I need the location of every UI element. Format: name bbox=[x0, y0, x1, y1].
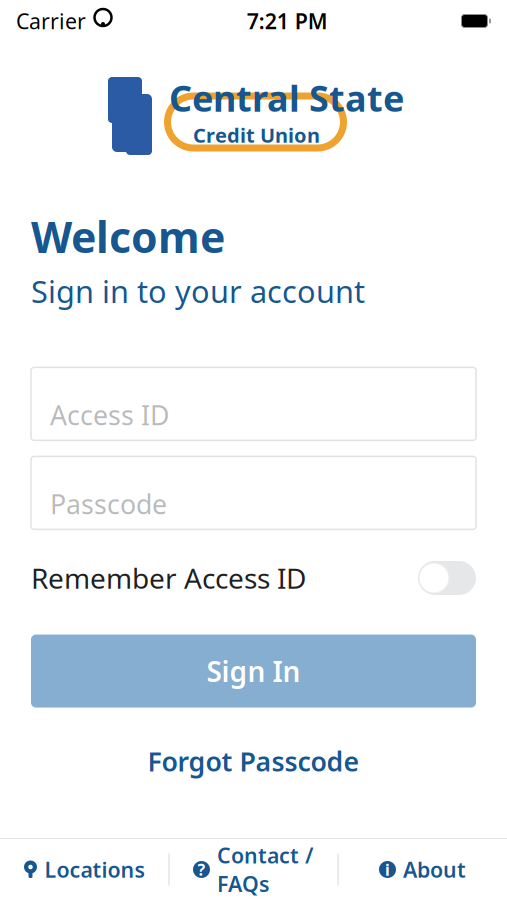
staticText: i bbox=[385, 859, 390, 880]
staticText: Remember Access ID bbox=[31, 559, 306, 597]
button[interactable]: Locations bbox=[0, 839, 168, 900]
button[interactable]: Forgot Passcode bbox=[131, 734, 375, 789]
staticText: Credit Union bbox=[193, 122, 320, 148]
staticText: Contact / FAQs bbox=[217, 841, 314, 898]
staticText: ? bbox=[197, 859, 205, 880]
staticText: Central State bbox=[169, 74, 404, 122]
staticText: Locations bbox=[44, 855, 145, 884]
button[interactable]: ? bbox=[169, 839, 337, 900]
button[interactable]: Passcode bbox=[31, 456, 476, 529]
staticText: Carrier bbox=[16, 7, 86, 35]
staticText: About bbox=[403, 855, 466, 884]
staticText: Welcome bbox=[31, 208, 225, 265]
button[interactable]: Access ID bbox=[31, 367, 476, 440]
button[interactable]: Sign In bbox=[31, 635, 476, 708]
button[interactable]: Remember Access ID bbox=[418, 561, 476, 595]
button[interactable]: i bbox=[338, 839, 506, 900]
staticText: Passcode bbox=[50, 486, 167, 522]
staticText: Sign in to your account bbox=[31, 271, 365, 311]
staticText: Forgot Passcode bbox=[147, 744, 359, 779]
staticText: Access ID bbox=[50, 397, 169, 433]
staticText: 7:21 PM bbox=[247, 7, 328, 35]
staticText: Sign In bbox=[206, 652, 300, 690]
